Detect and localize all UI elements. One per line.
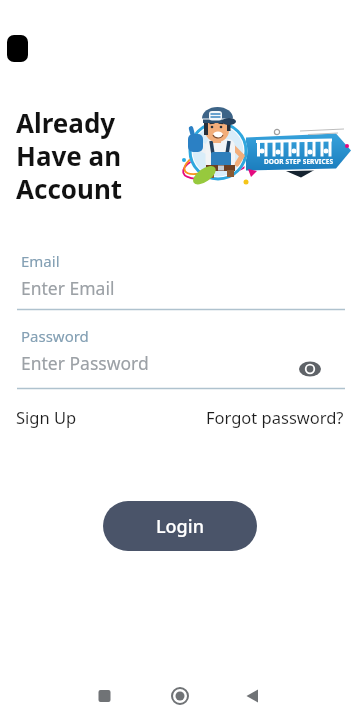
button[interactable]: Email: [16, 246, 346, 310]
button[interactable]: [120, 676, 240, 716]
staticText: Enter Password: [21, 351, 149, 375]
button[interactable]: Sign Up: [16, 406, 77, 428]
button[interactable]: [240, 676, 360, 716]
staticText: Enter Email: [21, 276, 115, 300]
staticText: DOOR STEP SERVICES: [264, 157, 334, 166]
staticText: Password: [21, 326, 89, 346]
staticText: Already Have an Account: [16, 105, 123, 207]
staticText: Login: [156, 514, 204, 539]
button[interactable]: Login: [103, 501, 257, 551]
staticText: Email: [21, 251, 60, 271]
button[interactable]: [0, 676, 120, 716]
staticText: Sign Up: [16, 406, 77, 428]
button[interactable]: Password: [16, 321, 346, 389]
button[interactable]: Forgot password?: [206, 406, 344, 428]
button[interactable]: [295, 354, 331, 380]
staticText: Forgot password?: [206, 406, 344, 428]
